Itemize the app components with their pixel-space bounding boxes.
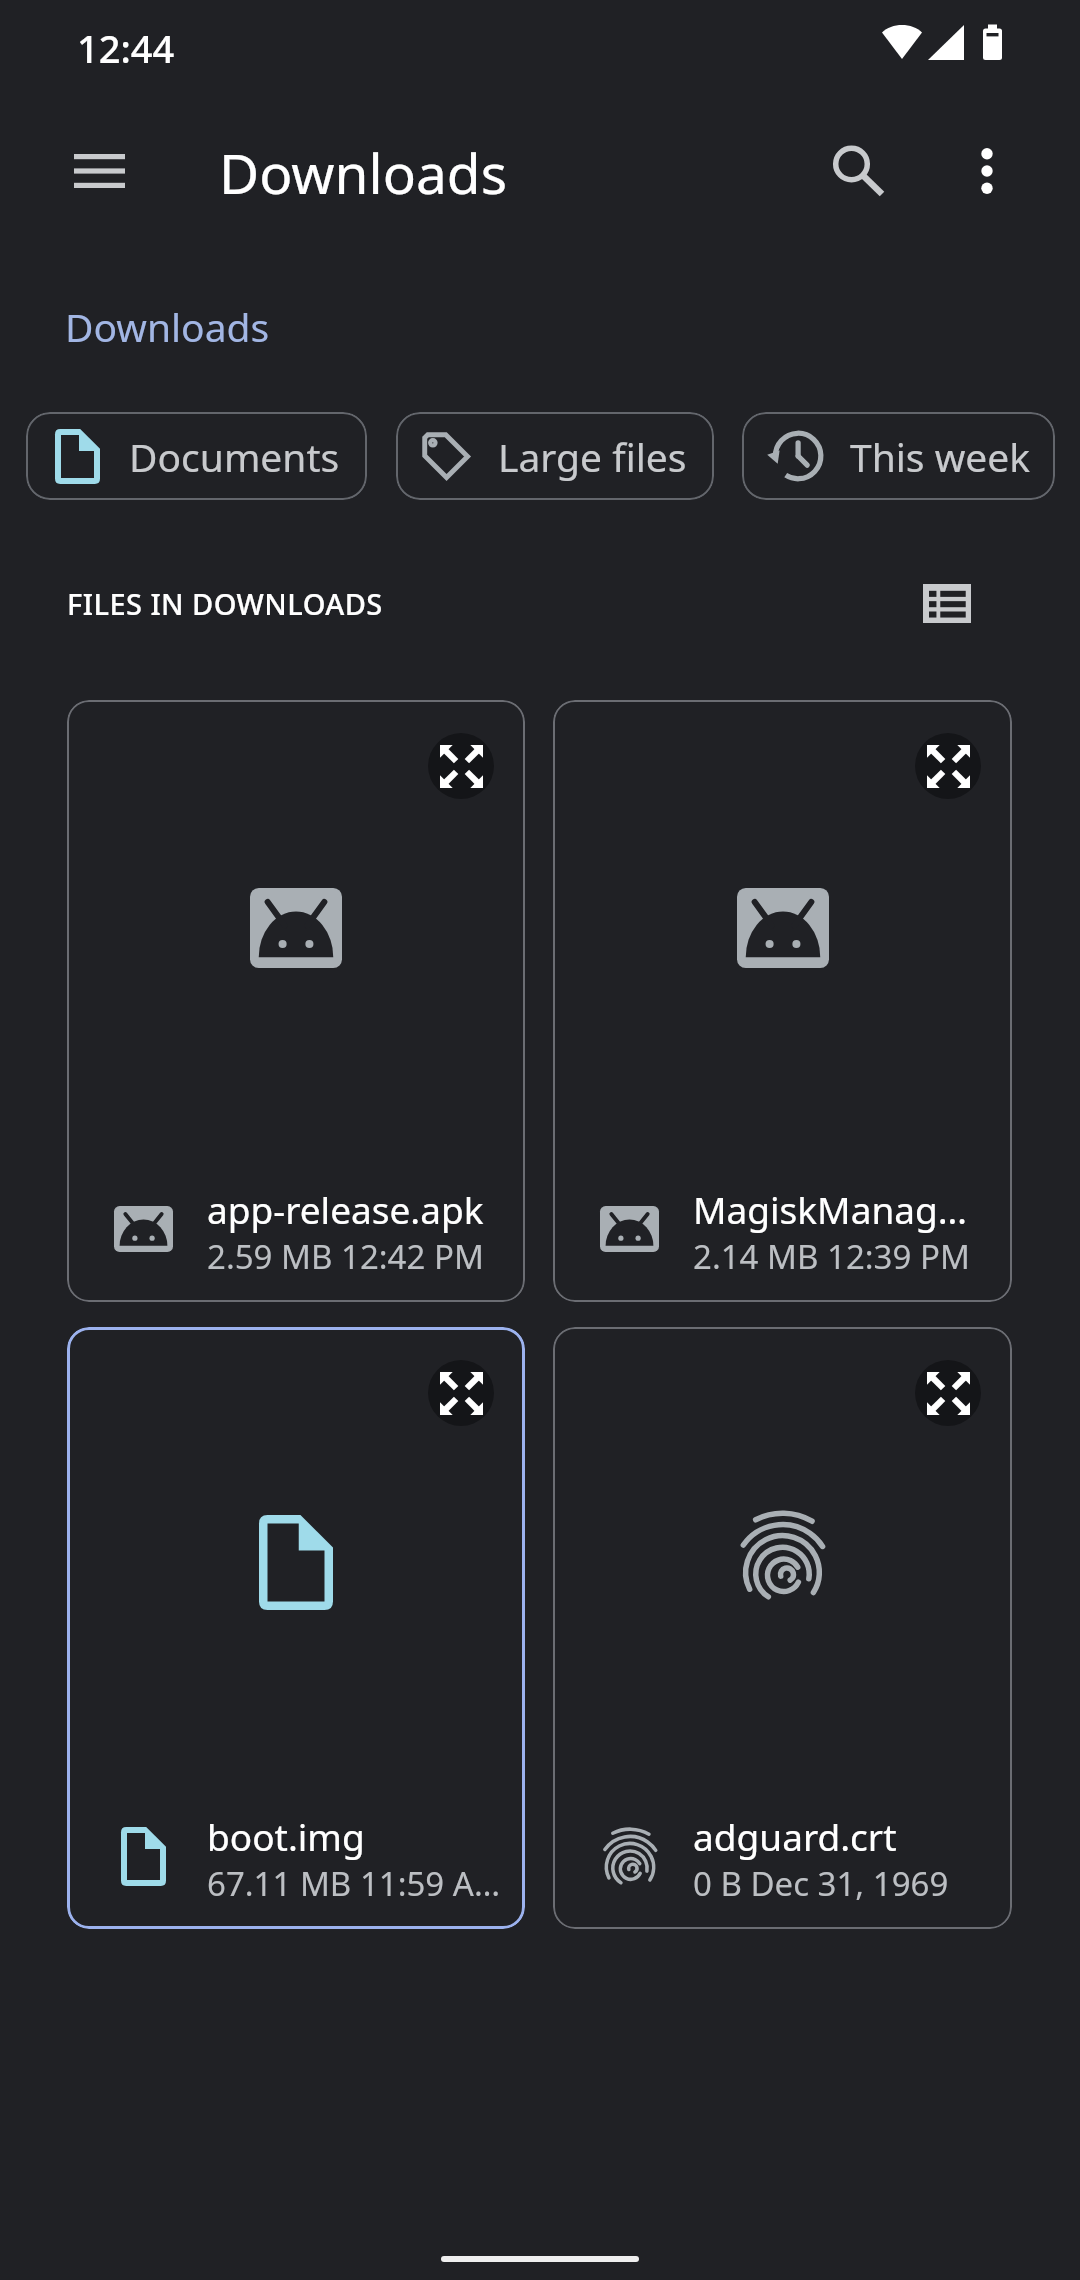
button[interactable]: Large files <box>396 412 714 500</box>
button[interactable]: This week <box>742 412 1055 500</box>
staticText: 12:44 <box>77 22 175 74</box>
button[interactable]: Expand preview <box>428 1360 494 1426</box>
staticText: Downloads <box>65 300 270 353</box>
staticText: Documents <box>129 430 340 483</box>
button[interactable]: More options <box>937 121 1037 221</box>
button[interactable]: Expand preview <box>915 733 981 799</box>
button[interactable]: Expand preview <box>428 733 494 799</box>
button[interactable]: Downloads <box>50 292 285 361</box>
button[interactable]: Open navigation drawer <box>44 116 154 226</box>
staticText: 67.11 MB 11:59 A… <box>207 1861 501 1906</box>
button[interactable]: Expand preview <box>915 1360 981 1426</box>
staticText: MagiskManag… <box>693 1184 968 1234</box>
staticText: 2.14 MB 12:39 PM <box>693 1234 970 1279</box>
button[interactable]: Switch to list view <box>909 565 985 641</box>
button[interactable]: Documents <box>26 412 367 500</box>
staticText: Large files <box>498 430 687 483</box>
staticText: This week <box>850 430 1031 483</box>
staticText: app-release.apk <box>207 1184 484 1234</box>
button[interactable]: Expand preview <box>553 700 1012 1302</box>
staticText: adguard.crt <box>693 1811 897 1861</box>
button[interactable]: Expand preview <box>553 1327 1012 1929</box>
staticText: 0 B Dec 31, 1969 <box>693 1861 949 1906</box>
button[interactable]: Expand preview <box>67 700 525 1302</box>
button[interactable]: Search <box>809 121 909 221</box>
staticText: Downloads <box>219 135 508 210</box>
staticText: 2.59 MB 12:42 PM <box>207 1234 484 1279</box>
button[interactable]: Expand preview <box>67 1327 525 1929</box>
staticText: FILES IN DOWNLOADS <box>67 584 383 623</box>
staticText: boot.img <box>207 1811 365 1861</box>
